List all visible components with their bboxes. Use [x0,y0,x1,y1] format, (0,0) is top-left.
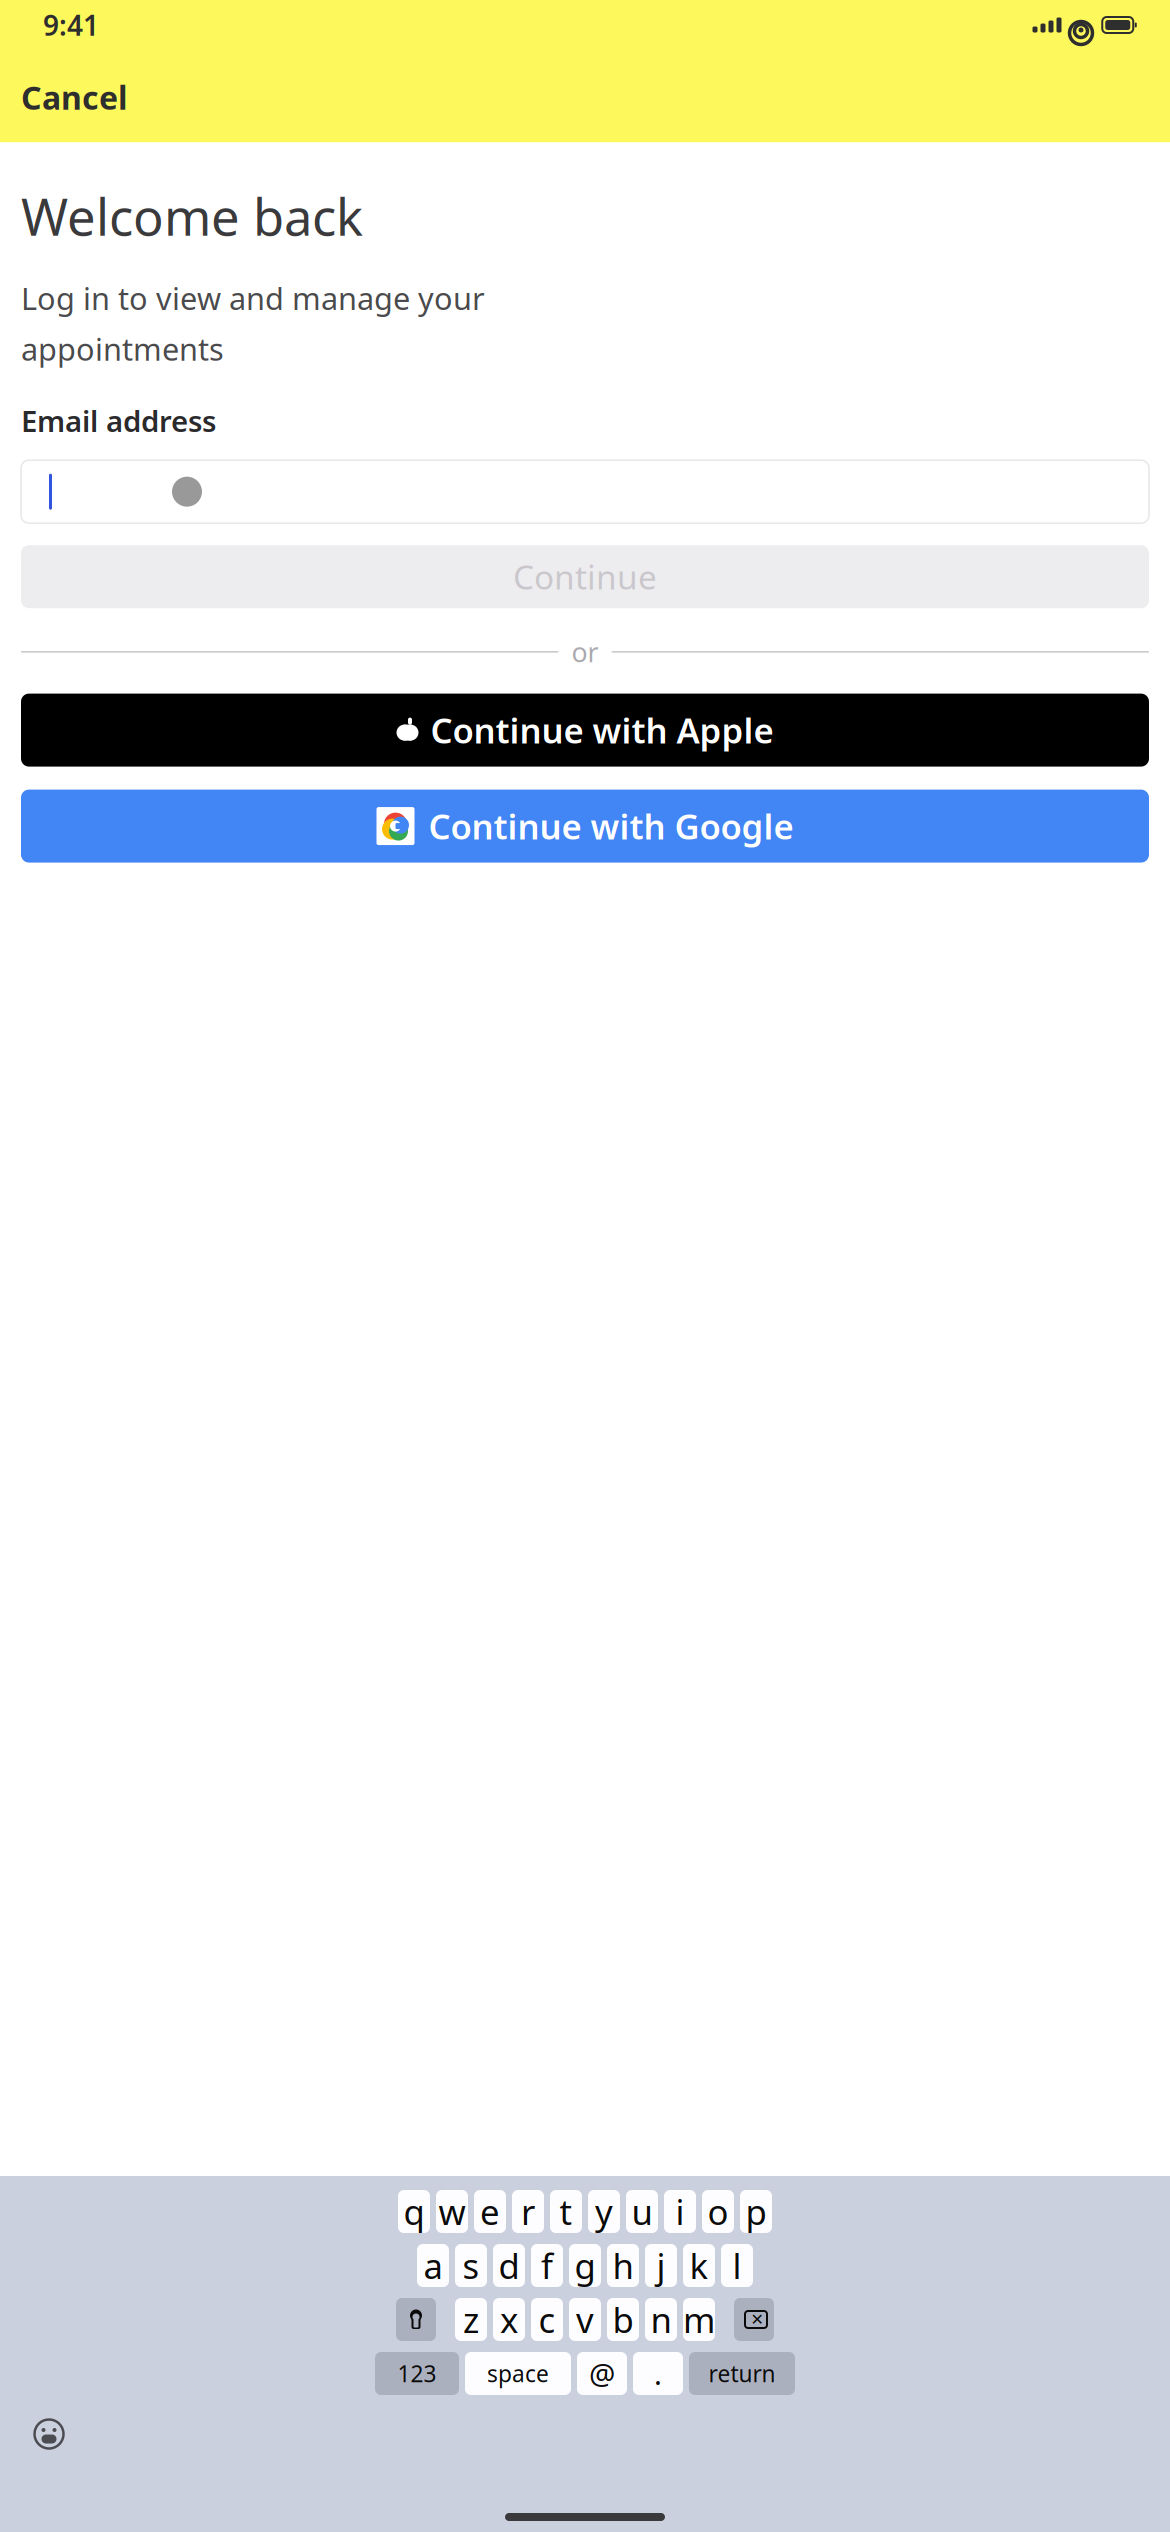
button[interactable]: e [474,2190,506,2233]
button[interactable]: h [607,2244,639,2287]
staticText: j [656,2242,665,2288]
button[interactable]: c [531,2298,563,2341]
button[interactable]: y [588,2190,620,2233]
staticText: i [675,2188,684,2234]
button[interactable]: a [417,2244,449,2287]
staticText: Continue [513,555,657,599]
button[interactable]: g [569,2244,601,2287]
button[interactable]: r [512,2190,544,2233]
button[interactable]: @ [577,2352,627,2395]
button[interactable]: w [436,2190,468,2233]
staticText: h [612,2242,633,2288]
staticText: z [463,2296,479,2342]
staticText: t [559,2188,572,2234]
button[interactable]: Continue with Google [21,790,1149,863]
button[interactable]: j [645,2244,677,2287]
button[interactable]: 123 [375,2352,459,2395]
staticText: n [650,2296,671,2342]
staticText: return [708,2358,775,2388]
staticText: d [498,2242,519,2288]
staticText: u [631,2188,652,2234]
button[interactable]: . [633,2352,683,2395]
button[interactable]: z [455,2298,487,2341]
button[interactable]: Delete [734,2298,774,2341]
staticText: appointments [21,328,224,369]
staticText: ✕ [750,2310,763,2329]
staticText: 123 [397,2358,436,2388]
staticText: @ [589,2354,615,2393]
staticText: q [403,2188,424,2234]
staticText: y [595,2188,613,2234]
staticText: Cancel [21,76,128,118]
staticText: Continue with Apple [430,707,773,753]
button[interactable]: v [569,2298,601,2341]
button[interactable]: b [607,2298,639,2341]
staticText: space [487,2358,549,2388]
button[interactable]: d [493,2244,525,2287]
button[interactable]: Email address field [21,460,1149,523]
button[interactable]: k [683,2244,715,2287]
staticText: a [423,2242,442,2288]
button[interactable]: t [550,2190,582,2233]
staticText: k [689,2242,708,2288]
button[interactable]: space [465,2352,571,2395]
staticText: l [732,2242,741,2288]
button[interactable]: x [493,2298,525,2341]
button[interactable]: s [455,2244,487,2287]
staticText: c [538,2296,555,2342]
button[interactable]: Emoji [26,2411,72,2457]
staticText: m [683,2296,715,2342]
button[interactable]: u [626,2190,658,2233]
staticText: w [438,2188,465,2234]
button[interactable]: n [645,2298,677,2341]
staticText: Log in to view and manage your [21,278,485,318]
staticText: p [745,2188,766,2234]
button[interactable]: m [683,2298,715,2341]
button[interactable]: o [702,2190,734,2233]
button[interactable]: Continue with Apple [21,694,1149,767]
staticText: x [500,2296,518,2342]
button[interactable]: f [531,2244,563,2287]
button[interactable]: p [740,2190,772,2233]
staticText: g [574,2242,595,2288]
button[interactable]: return [689,2352,795,2395]
staticText: Continue with Google [428,803,793,849]
staticText: or [571,634,598,670]
button[interactable]: l [721,2244,753,2287]
button[interactable]: q [398,2190,430,2233]
staticText: e [480,2188,500,2234]
staticText: 9:41 [43,6,99,44]
staticText: . [654,2354,662,2393]
staticText: b [612,2296,633,2342]
button[interactable]: Shift [396,2298,436,2341]
staticText: o [707,2188,728,2234]
button[interactable]: i [664,2190,696,2233]
staticText: r [521,2188,535,2234]
button[interactable]: Cancel [19,70,130,124]
staticText: Welcome back [21,182,363,250]
staticText: s [462,2242,479,2288]
staticText: v [576,2296,594,2342]
staticText: f [541,2242,553,2288]
staticText: Email address [21,401,216,440]
button[interactable]: Continue [21,545,1149,608]
